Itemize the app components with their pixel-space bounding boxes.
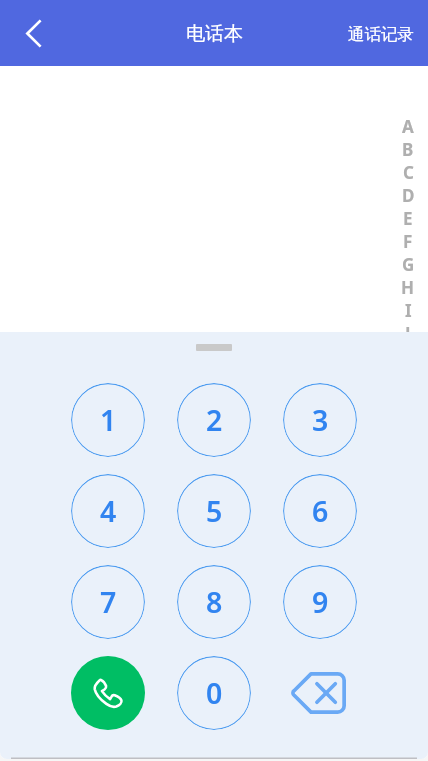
staticText: F xyxy=(403,230,413,253)
button[interactable]: B xyxy=(400,138,416,161)
button[interactable]: E xyxy=(400,207,416,230)
button[interactable]: Back xyxy=(11,11,55,55)
staticText: 6 xyxy=(312,492,329,531)
button[interactable]: Call xyxy=(71,656,145,730)
staticText: 7 xyxy=(100,583,117,622)
staticText: 通话记录 xyxy=(348,24,414,45)
staticText: 0 xyxy=(206,674,223,713)
staticText: 5 xyxy=(206,492,223,531)
staticText: I xyxy=(405,299,412,322)
staticText: 4 xyxy=(100,492,117,531)
staticText: G xyxy=(402,253,415,276)
button[interactable]: C xyxy=(400,161,416,184)
button[interactable]: I xyxy=(400,299,416,322)
button[interactable]: J xyxy=(400,322,416,332)
staticText: E xyxy=(403,207,413,230)
button[interactable]: 通话记录 xyxy=(332,11,428,56)
staticText: 8 xyxy=(206,583,223,622)
staticText: 9 xyxy=(312,583,329,622)
staticText: B xyxy=(402,138,414,161)
button[interactable]: G xyxy=(400,253,416,276)
staticText: 2 xyxy=(206,401,223,440)
button[interactable]: 1 xyxy=(71,383,145,457)
button[interactable]: D xyxy=(400,184,416,207)
staticText: A xyxy=(402,115,414,138)
button[interactable]: 9 xyxy=(283,565,357,639)
staticText: 电话本 xyxy=(186,22,243,46)
staticText: C xyxy=(403,161,414,184)
button[interactable]: 5 xyxy=(177,474,251,548)
staticText: 3 xyxy=(312,401,329,440)
button[interactable]: 0 xyxy=(177,656,251,730)
staticText: D xyxy=(402,184,415,207)
staticText: H xyxy=(401,276,415,299)
button[interactable]: 3 xyxy=(283,383,357,457)
button[interactable]: 4 xyxy=(71,474,145,548)
button[interactable]: 6 xyxy=(283,474,357,548)
button[interactable]: 7 xyxy=(71,565,145,639)
button[interactable]: A xyxy=(400,115,416,138)
staticText: J xyxy=(405,322,411,332)
button[interactable]: Backspace xyxy=(283,656,357,730)
button[interactable]: H xyxy=(400,276,416,299)
button[interactable]: F xyxy=(400,230,416,253)
button[interactable]: 2 xyxy=(177,383,251,457)
button[interactable]: 8 xyxy=(177,565,251,639)
staticText: 1 xyxy=(100,401,117,440)
